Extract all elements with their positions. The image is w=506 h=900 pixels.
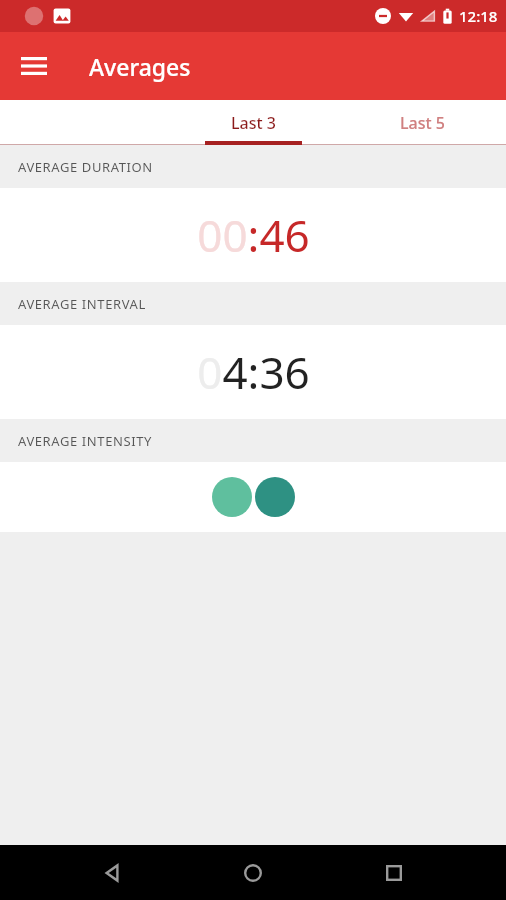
staticText: Last 5 xyxy=(400,112,445,134)
staticText: AVERAGE DURATION xyxy=(18,158,153,176)
button[interactable] xyxy=(0,462,506,532)
staticText: AVERAGE INTERVAL xyxy=(18,295,146,313)
button[interactable]: Back xyxy=(85,845,141,900)
button[interactable]: 04:36 xyxy=(0,325,506,419)
staticText: Averages xyxy=(89,51,191,82)
staticText: 04:36 xyxy=(197,342,310,402)
staticText: AVERAGE INTENSITY xyxy=(18,432,152,450)
button[interactable]: Recent apps xyxy=(366,845,422,900)
staticText: Last 3 xyxy=(231,112,276,134)
staticText: 00:46 xyxy=(197,205,310,265)
button[interactable]: Open navigation drawer xyxy=(10,42,58,90)
button[interactable]: Last 3 xyxy=(205,100,302,145)
button[interactable]: 00:46 xyxy=(0,188,506,282)
staticText: 12:18 xyxy=(459,6,498,26)
button[interactable] xyxy=(0,100,205,145)
button[interactable]: Home xyxy=(225,845,281,900)
button[interactable]: Last 5 xyxy=(302,100,506,145)
